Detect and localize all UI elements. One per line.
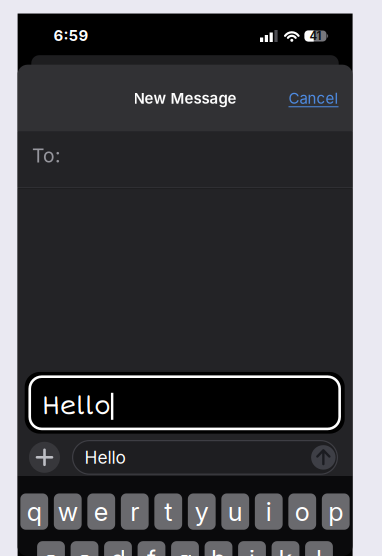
staticText: a (44, 544, 58, 556)
staticText: 6:59 (53, 26, 88, 44)
button[interactable]: t (154, 493, 182, 530)
staticText: k (278, 544, 292, 556)
staticText: Hello (42, 391, 111, 422)
staticText: To: (32, 144, 61, 167)
staticText: e (94, 496, 109, 527)
button[interactable]: s (71, 541, 98, 556)
button[interactable]: h (205, 541, 232, 556)
staticText: y (195, 496, 209, 527)
button[interactable]: u (221, 493, 249, 530)
button[interactable]: r (121, 493, 149, 530)
button[interactable]: f (138, 541, 165, 556)
staticText: 41 (309, 29, 321, 43)
staticText: p (328, 496, 343, 527)
staticText: l (316, 544, 322, 556)
staticText: d (110, 544, 125, 556)
button[interactable]: p (322, 493, 350, 530)
staticText: s (78, 544, 91, 556)
button[interactable]: e (87, 493, 115, 530)
button[interactable]: q (20, 493, 48, 530)
button[interactable]: o (288, 493, 316, 530)
button[interactable]: Cancel (288, 89, 338, 107)
staticText: Hello (84, 447, 125, 468)
staticText: q (27, 496, 42, 527)
staticText: u (228, 496, 243, 527)
button[interactable]: w (54, 493, 82, 530)
staticText: i (266, 496, 272, 527)
staticText: Cancel (288, 89, 338, 107)
staticText: h (211, 544, 226, 556)
button[interactable]: d (104, 541, 132, 556)
button[interactable]: k (272, 541, 299, 556)
button[interactable]: j (238, 541, 266, 556)
staticText: g (177, 544, 192, 556)
button[interactable]: a (37, 541, 65, 556)
button[interactable]: g (171, 541, 199, 556)
button[interactable]: Apps (29, 442, 60, 473)
button[interactable]: To: (17, 132, 352, 187)
staticText: o (295, 496, 310, 527)
staticText: r (130, 496, 139, 527)
button[interactable]: l (305, 541, 333, 556)
staticText: t (164, 496, 172, 527)
staticText: New Message (133, 89, 236, 107)
button[interactable]: i (255, 493, 283, 530)
staticText: f (147, 544, 156, 556)
button[interactable]: y (188, 493, 216, 530)
button[interactable]: Send (311, 445, 336, 470)
staticText: w (58, 496, 78, 527)
staticText: j (249, 544, 255, 556)
